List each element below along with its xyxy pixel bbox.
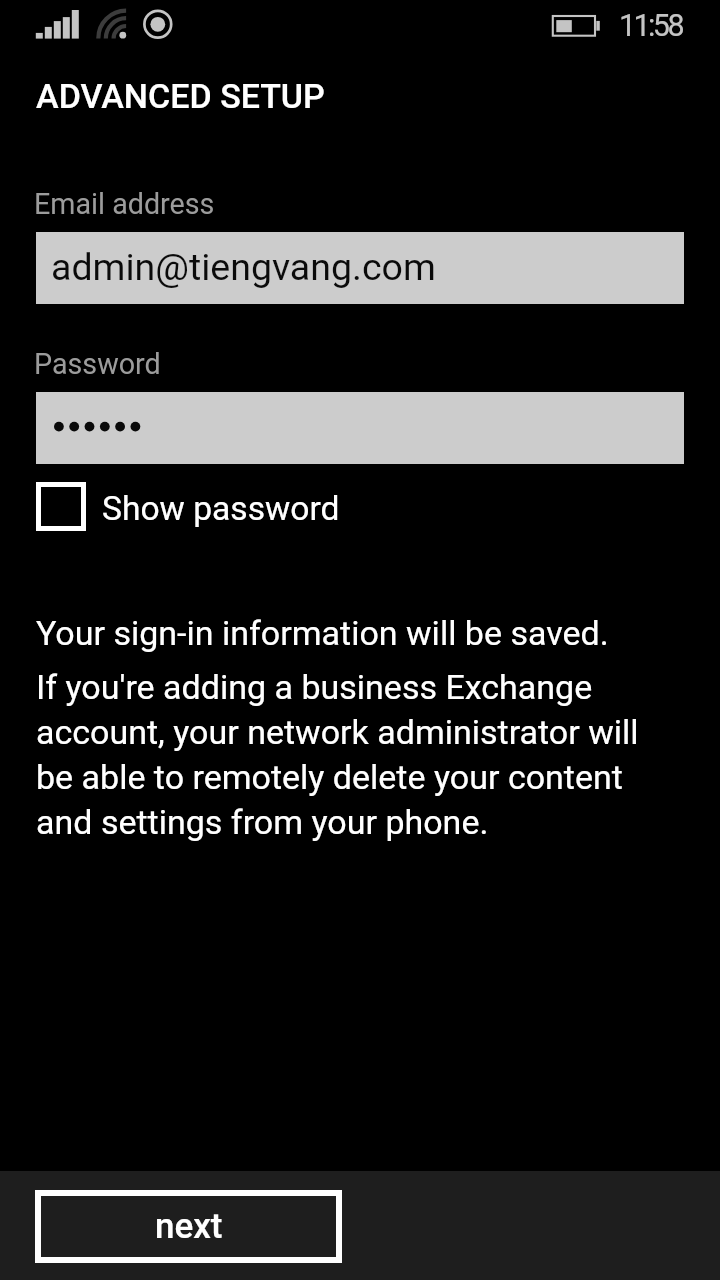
- staticText: Show password: [102, 489, 340, 528]
- staticText: 11:58: [619, 8, 682, 44]
- button[interactable]: next: [35, 1190, 342, 1263]
- other: Location in use: [141, 8, 175, 42]
- button[interactable]: Show password: [20, 472, 356, 540]
- staticText: Your sign-in information will be saved.: [36, 613, 609, 653]
- staticText: next: [155, 1206, 223, 1247]
- other: Battery: [549, 12, 603, 40]
- staticText: Email address: [34, 187, 215, 221]
- staticText: If you're adding a business Exchange acc…: [36, 667, 639, 842]
- other: Wi-Fi: [94, 6, 130, 42]
- staticText: ADVANCED SETUP: [36, 76, 325, 116]
- button[interactable]: admin@tiengvang.com: [36, 232, 684, 304]
- staticText: admin@tiengvang.com: [51, 245, 436, 289]
- other: Cellular signal: [35, 8, 81, 40]
- staticText: Password: [34, 347, 161, 381]
- button[interactable]: Password: [36, 392, 684, 464]
